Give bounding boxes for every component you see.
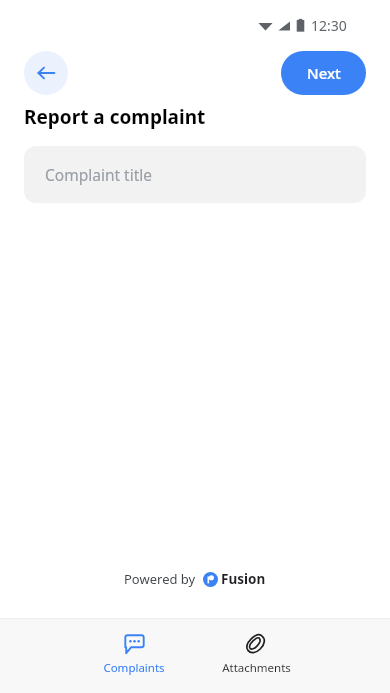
- button[interactable]: Next: [281, 51, 366, 95]
- staticText: 12:30: [311, 16, 347, 35]
- staticText: Complaint title: [45, 164, 153, 185]
- staticText: Report a complaint: [24, 104, 206, 130]
- button[interactable]: Complaints: [86, 619, 182, 676]
- button[interactable]: Attachments: [208, 619, 304, 676]
- staticText: Complaints: [103, 660, 165, 676]
- staticText: Attachments: [222, 660, 291, 676]
- button[interactable]: Complaint title: [24, 146, 366, 203]
- staticText: Next: [307, 63, 341, 83]
- staticText: Powered by: [124, 570, 196, 588]
- button[interactable]: Back: [24, 51, 68, 95]
- staticText: Fusion: [221, 570, 266, 588]
